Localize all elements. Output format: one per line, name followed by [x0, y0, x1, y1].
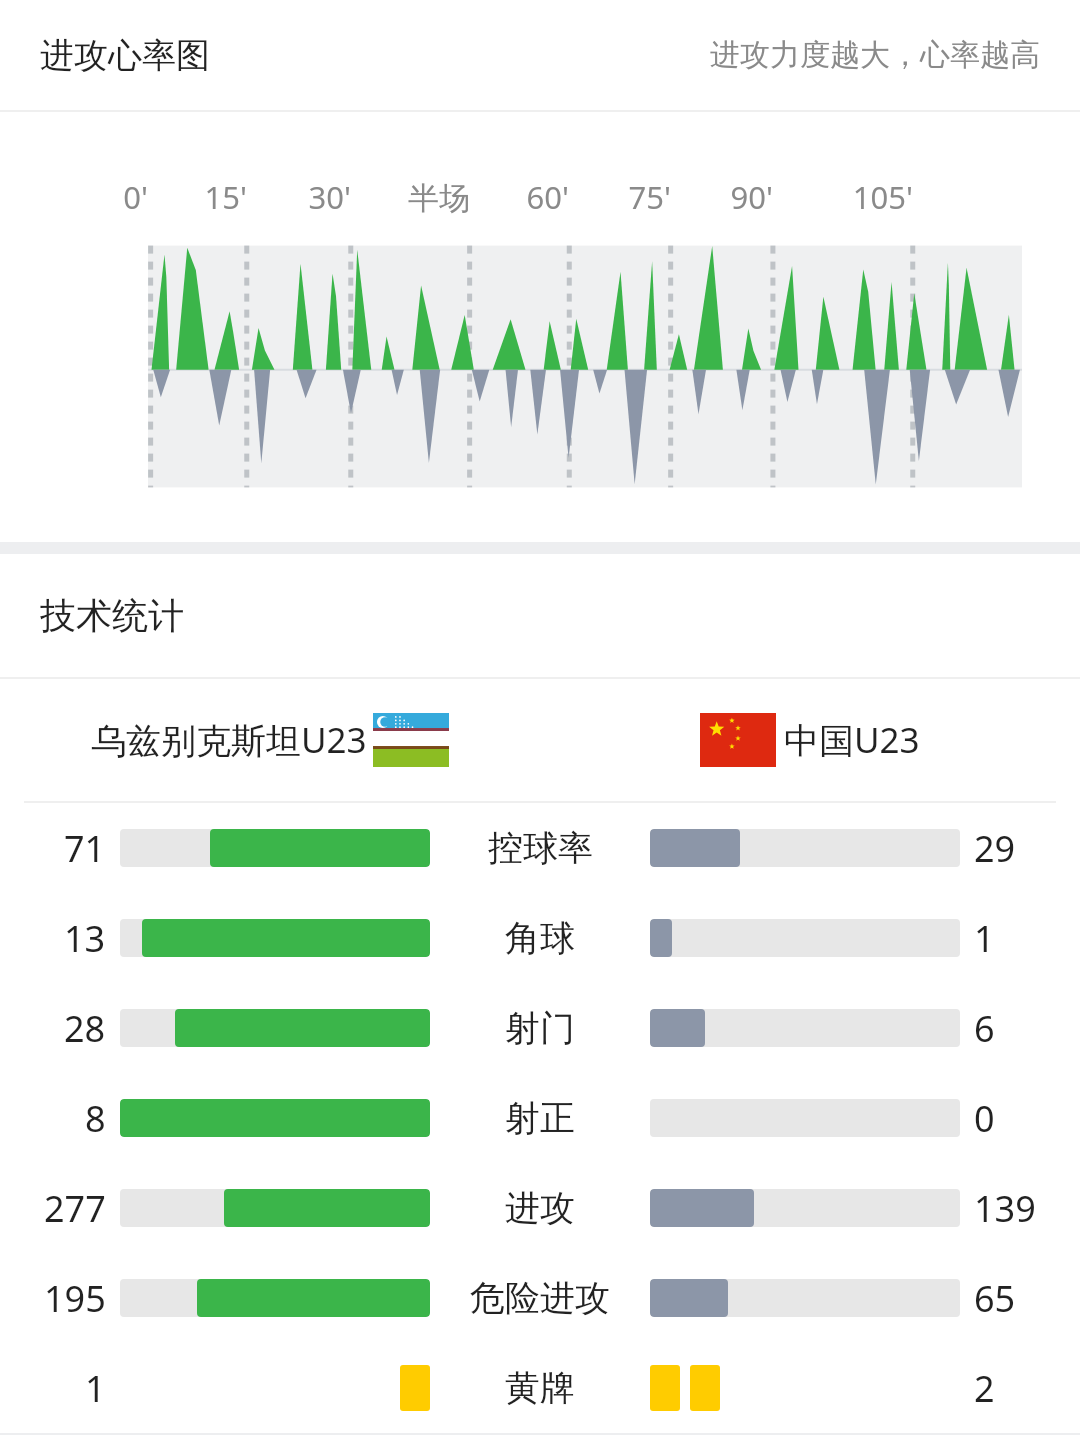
button[interactable]: 1	[0, 1343, 1080, 1433]
staticText: 30'	[308, 176, 351, 218]
staticText: 射门	[505, 1006, 575, 1050]
staticText: 1	[974, 914, 995, 963]
staticText: 黄牌	[505, 1366, 575, 1410]
button[interactable]: 进攻心率图	[0, 0, 1080, 110]
other: Yellow card	[650, 1365, 680, 1411]
other: Yellow card	[400, 1365, 430, 1411]
staticText: 控球率	[488, 826, 593, 870]
staticText: 29	[974, 824, 1016, 873]
staticText: 中国U23	[784, 716, 920, 764]
button[interactable]: 13	[0, 893, 1080, 983]
staticText: 6	[974, 1004, 995, 1053]
staticText: 60'	[526, 176, 569, 218]
staticText: 1	[85, 1364, 106, 1413]
staticText: 技术统计	[40, 593, 184, 638]
button[interactable]: 乌兹别克斯坦U23	[0, 679, 1080, 801]
staticText: 71	[64, 824, 106, 873]
staticText: 8	[85, 1094, 106, 1143]
staticText: 139	[974, 1184, 1036, 1233]
staticText: 195	[44, 1274, 106, 1323]
staticText: 2	[974, 1364, 995, 1413]
staticText: 13	[64, 914, 106, 963]
button[interactable]: 195	[0, 1253, 1080, 1343]
staticText: 半场	[408, 179, 470, 218]
staticText: 15'	[204, 176, 247, 218]
staticText: 进攻心率图	[40, 34, 210, 77]
button[interactable]: 71	[0, 803, 1080, 893]
staticText: 75'	[628, 176, 671, 218]
staticText: 乌兹别克斯坦U23	[91, 716, 367, 764]
button[interactable]: 8	[0, 1073, 1080, 1163]
button[interactable]: 28	[0, 983, 1080, 1073]
staticText: 0	[974, 1094, 995, 1143]
staticText: 危险进攻	[470, 1276, 610, 1320]
staticText: 进攻力度越大，心率越高	[710, 36, 1040, 74]
button[interactable]: 277	[0, 1163, 1080, 1253]
staticText: 65	[974, 1274, 1016, 1323]
staticText: 105'	[852, 176, 913, 218]
staticText: 0'	[123, 176, 148, 218]
staticText: 277	[44, 1184, 106, 1233]
staticText: 射正	[505, 1096, 575, 1140]
other: Yellow card	[690, 1365, 720, 1411]
button[interactable]: 技术统计	[0, 554, 1080, 677]
staticText: 进攻	[505, 1186, 575, 1230]
staticText: 90'	[730, 176, 773, 218]
staticText: 角球	[505, 916, 575, 960]
staticText: 28	[64, 1004, 106, 1053]
